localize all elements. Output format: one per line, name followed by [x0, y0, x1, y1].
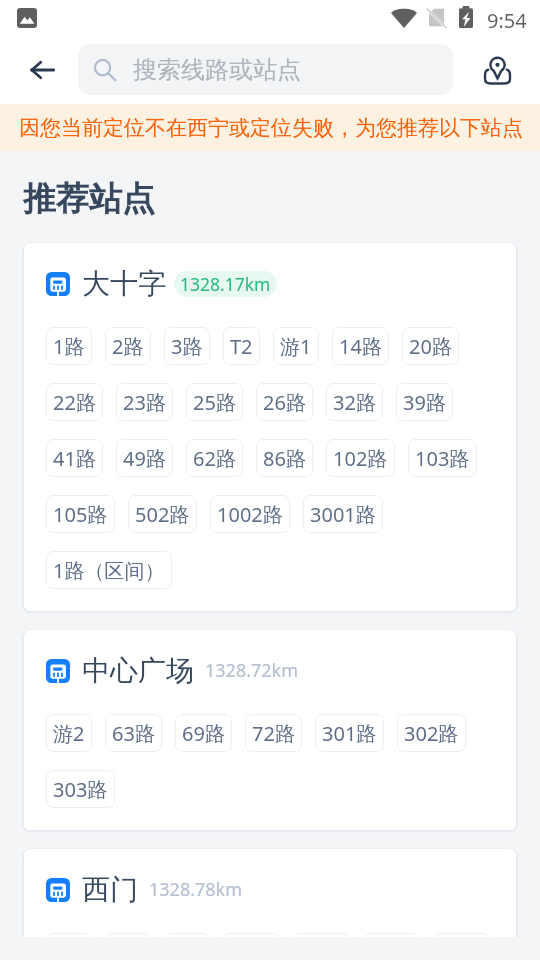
button[interactable]: 西门: [24, 849, 516, 937]
button[interactable]: 25路: [186, 383, 243, 421]
button[interactable]: 22路: [46, 383, 103, 421]
staticText: 69路: [182, 720, 225, 747]
button[interactable]: 86路: [256, 439, 313, 477]
button[interactable]: 大十字: [24, 243, 516, 611]
staticText: 22路: [53, 389, 96, 416]
staticText: 20路: [409, 333, 452, 360]
staticText: 9:54: [487, 7, 527, 34]
staticText: 西门: [82, 872, 138, 907]
staticText: 32路: [333, 389, 376, 416]
staticText: 41路: [53, 445, 96, 472]
button[interactable]: 20路: [402, 327, 459, 365]
staticText: 推荐站点: [23, 178, 155, 220]
staticText: 502路: [135, 501, 190, 528]
staticText: 1328.17km: [180, 272, 271, 296]
button[interactable]: 2路: [105, 933, 151, 937]
staticText: 25路: [193, 389, 236, 416]
button[interactable]: 中心广场: [24, 630, 516, 830]
button[interactable]: 62路: [186, 439, 243, 477]
button[interactable]: 103路: [408, 439, 477, 477]
staticText: 301路: [322, 720, 377, 747]
staticText: 搜索线路或站点: [133, 55, 301, 85]
button[interactable]: 1路（区间）: [46, 551, 172, 589]
button[interactable]: 25路: [293, 933, 350, 937]
button[interactable]: 23路: [116, 383, 173, 421]
button[interactable]: 搜索线路或站点: [78, 44, 453, 95]
staticText: 中心广场: [82, 653, 194, 688]
button[interactable]: 102路: [326, 439, 395, 477]
button[interactable]: 63路: [105, 714, 162, 752]
staticText: 23路: [123, 389, 166, 416]
staticText: 39路: [403, 389, 446, 416]
button[interactable]: 26路: [363, 933, 420, 937]
button[interactable]: 69路: [175, 714, 232, 752]
staticText: 1路: [53, 333, 85, 360]
staticText: 大十字: [82, 266, 166, 301]
staticText: 72路: [252, 720, 295, 747]
button[interactable]: 105路: [46, 495, 115, 533]
button[interactable]: 3路: [164, 327, 210, 365]
button[interactable]: 1路: [46, 933, 92, 937]
button[interactable]: 41路: [46, 439, 103, 477]
button[interactable]: 游1: [273, 327, 319, 365]
button[interactable]: 14路: [332, 327, 389, 365]
staticText: 303路: [53, 776, 108, 803]
staticText: 2路: [112, 333, 144, 360]
button[interactable]: T2: [223, 327, 260, 365]
staticText: 105路: [53, 501, 108, 528]
staticText: 3001路: [310, 501, 376, 528]
staticText: T2: [230, 333, 253, 360]
staticText: 1328.72km: [205, 658, 299, 683]
button[interactable]: Back: [16, 44, 68, 96]
staticText: 1路（区间）: [53, 557, 165, 584]
staticText: 86路: [263, 445, 306, 472]
staticText: 26路: [263, 389, 306, 416]
button[interactable]: 72路: [245, 714, 302, 752]
button[interactable]: 1002路: [210, 495, 290, 533]
button[interactable]: 39路: [396, 383, 453, 421]
staticText: 1328.78km: [149, 877, 243, 902]
button[interactable]: Nearby stations: [471, 44, 523, 96]
staticText: 49路: [123, 445, 166, 472]
staticText: 14路: [339, 333, 382, 360]
button[interactable]: 3路: [164, 933, 210, 937]
staticText: 因您当前定位不在西宁或定位失败，为您推荐以下站点: [19, 115, 523, 141]
button[interactable]: 2路: [105, 327, 151, 365]
staticText: 1002路: [217, 501, 283, 528]
staticText: 游1: [280, 333, 312, 360]
staticText: 103路: [415, 445, 470, 472]
staticText: 102路: [333, 445, 388, 472]
button[interactable]: 32路: [433, 933, 490, 937]
staticText: 游2: [53, 720, 85, 747]
button[interactable]: 22路: [223, 933, 280, 937]
button[interactable]: 302路: [397, 714, 466, 752]
staticText: 62路: [193, 445, 236, 472]
button[interactable]: 301路: [315, 714, 384, 752]
button[interactable]: 游2: [46, 714, 92, 752]
button[interactable]: 502路: [128, 495, 197, 533]
button[interactable]: 1路: [46, 327, 92, 365]
button[interactable]: 3001路: [303, 495, 383, 533]
staticText: 3路: [171, 333, 203, 360]
button[interactable]: 49路: [116, 439, 173, 477]
button[interactable]: 32路: [326, 383, 383, 421]
staticText: 63路: [112, 720, 155, 747]
staticText: 302路: [404, 720, 459, 747]
button[interactable]: 26路: [256, 383, 313, 421]
button[interactable]: 303路: [46, 770, 115, 808]
